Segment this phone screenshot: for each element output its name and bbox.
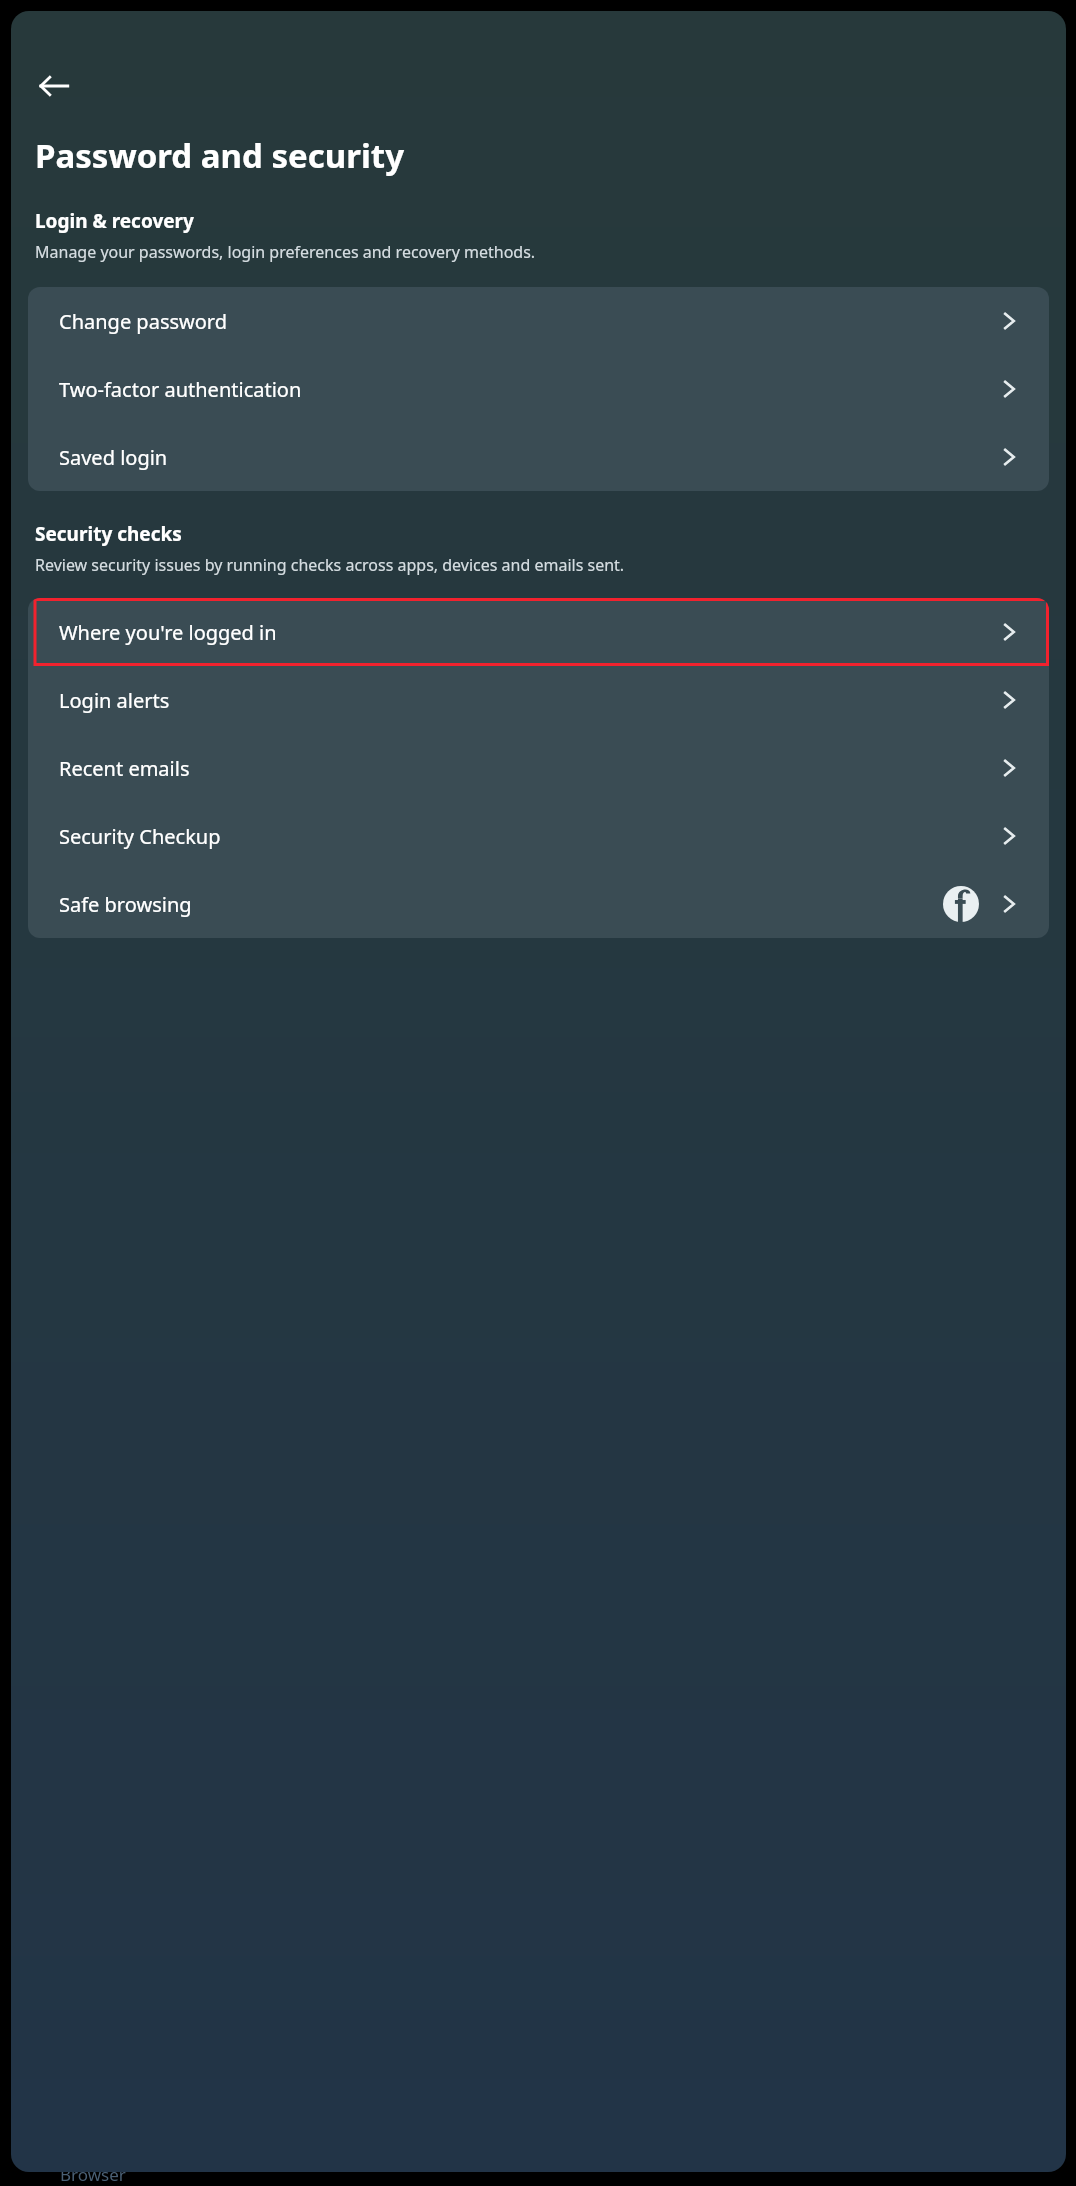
staticText: Manage your passwords, login preferences…	[35, 241, 536, 263]
staticText: Security checks	[35, 521, 182, 547]
button[interactable]: Security Checkup	[28, 802, 1049, 870]
staticText: Change password	[59, 308, 997, 335]
button[interactable]: Recent emails	[28, 734, 1049, 802]
button[interactable]: Login alerts	[28, 666, 1049, 734]
staticText: Two-factor authentication	[59, 376, 997, 403]
staticText: Login alerts	[59, 687, 997, 714]
staticText: Safe browsing	[59, 891, 943, 918]
staticText: Saved login	[59, 444, 997, 471]
staticText: Password and security	[35, 133, 404, 178]
button[interactable]: Two-factor authentication	[28, 355, 1049, 423]
button[interactable]: Safe browsing	[28, 870, 1049, 938]
button[interactable]: Where you're logged in	[28, 598, 1049, 666]
staticText: Where you're logged in	[59, 619, 997, 646]
button[interactable]: Saved login	[28, 423, 1049, 491]
staticText: Login & recovery	[35, 208, 194, 234]
staticText: Browser	[60, 2163, 126, 2186]
staticText: Security Checkup	[59, 823, 997, 850]
button[interactable]: Back	[25, 57, 83, 115]
staticText: Review security issues by running checks…	[35, 554, 625, 576]
button[interactable]: Change password	[28, 287, 1049, 355]
staticText: Recent emails	[59, 755, 997, 782]
